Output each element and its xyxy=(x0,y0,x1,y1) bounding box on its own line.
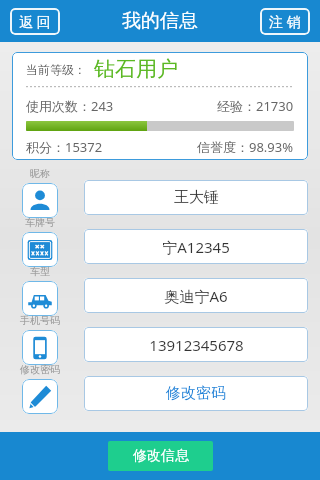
staticText: 王大锤 xyxy=(174,188,219,207)
staticText: 宁A12345 xyxy=(162,237,230,257)
staticText: 修改密码 xyxy=(20,363,60,376)
staticText: 修改信息 xyxy=(133,447,189,465)
staticText: 注 销 xyxy=(269,12,301,31)
button[interactable]: 王大锤 xyxy=(84,180,308,215)
button[interactable]: 手机号码 xyxy=(22,330,58,365)
button[interactable]: 车牌号 xyxy=(22,232,58,267)
button[interactable]: 昵称 xyxy=(22,183,58,218)
button[interactable]: 13912345678 xyxy=(84,327,308,362)
staticText: 返 回 xyxy=(19,12,51,31)
staticText: 奥迪宁A6 xyxy=(164,286,228,306)
button[interactable]: 修改密码 xyxy=(22,379,58,414)
staticText: 手机号码 xyxy=(20,314,60,327)
staticText: 我的信息 xyxy=(122,9,198,33)
button[interactable]: 注 销 xyxy=(260,8,310,35)
button[interactable]: 修改密码 xyxy=(84,376,308,411)
staticText: 昵称 xyxy=(30,167,50,180)
staticText: 修改密码 xyxy=(166,384,226,403)
staticText: 积分：15372 xyxy=(26,138,103,156)
staticText: 钻石用户 xyxy=(94,56,178,82)
staticText: 车牌号 xyxy=(25,216,55,229)
button[interactable]: 车型 xyxy=(22,281,58,316)
button[interactable]: 宁A12345 xyxy=(84,229,308,264)
staticText: 车型 xyxy=(30,265,50,278)
button[interactable]: 修改信息 xyxy=(108,441,213,471)
staticText: 13912345678 xyxy=(149,335,244,355)
staticText: 经验：21730 xyxy=(217,97,294,115)
staticText: 使用次数：243 xyxy=(26,97,114,115)
button[interactable]: 返 回 xyxy=(10,8,60,35)
staticText: 当前等级： xyxy=(26,62,86,77)
staticText: 信誉度：98.93% xyxy=(197,138,294,156)
button[interactable]: 奥迪宁A6 xyxy=(84,278,308,313)
